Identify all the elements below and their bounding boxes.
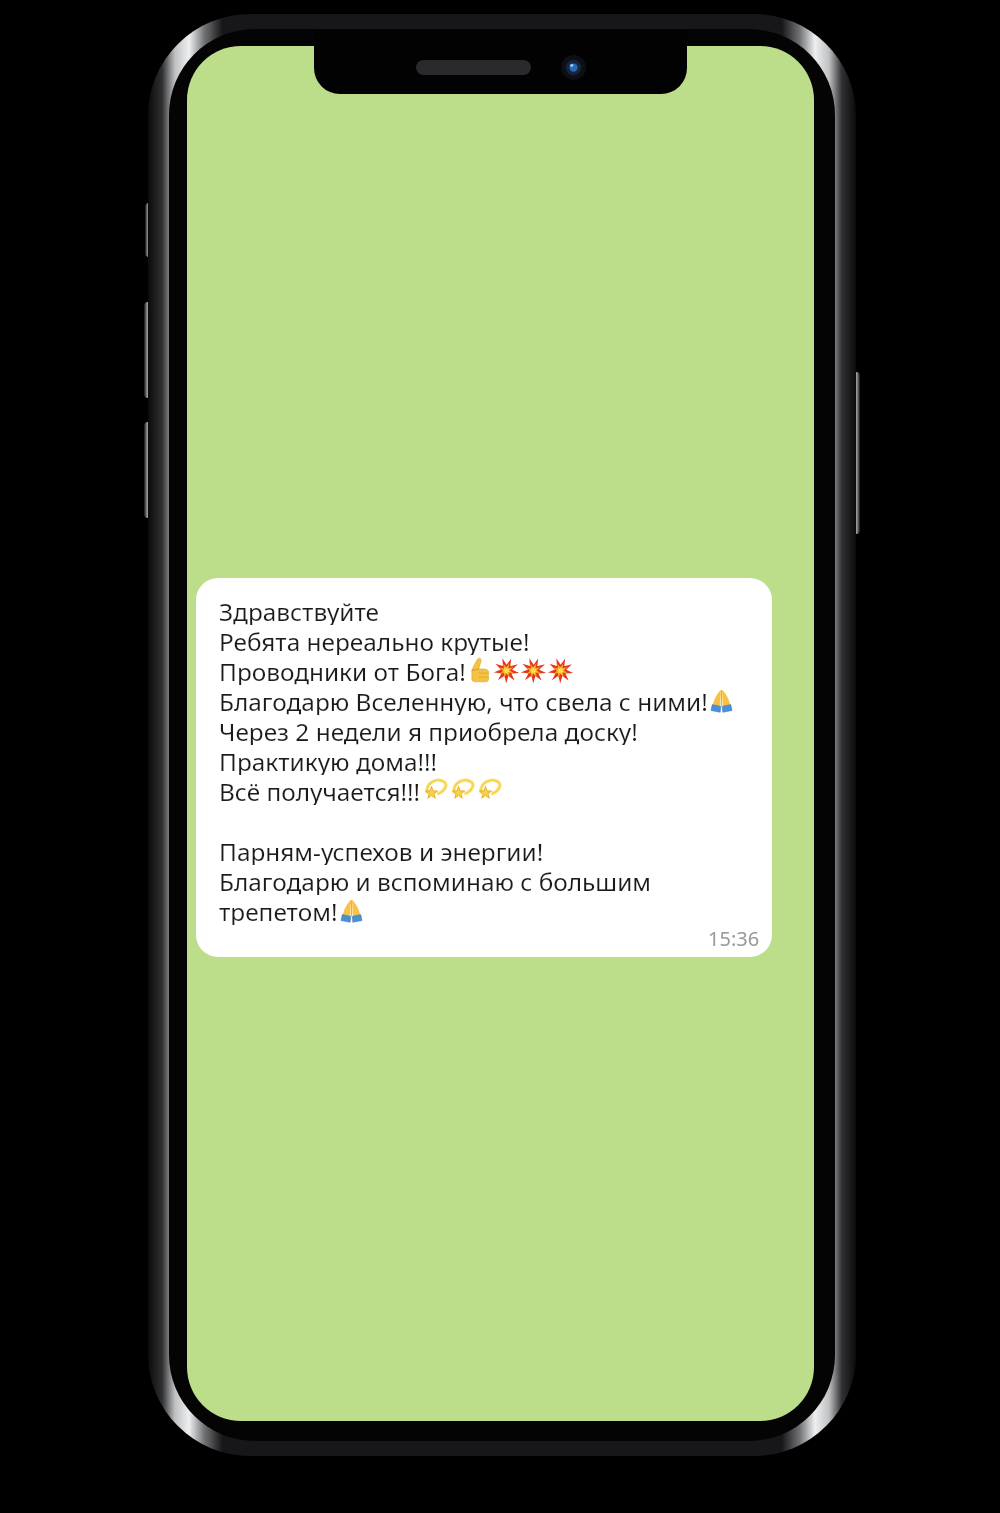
staticText: трепетом!: [219, 895, 338, 925]
button[interactable]: Volume up: [144, 302, 153, 398]
button[interactable]: Здравствуйте: [196, 578, 772, 957]
staticText: Всё получается!!!: [219, 775, 421, 805]
staticText: Проводники от Бога!: [219, 655, 466, 685]
staticText: 15:36: [708, 925, 760, 951]
other: Front camera: [561, 55, 586, 80]
staticText: Через 2 недели я приобрела доску!: [219, 715, 638, 745]
button[interactable]: Power: [851, 372, 860, 534]
staticText: Благодарю и вспоминаю с большим: [219, 865, 652, 895]
staticText: Парням-успехов и энергии!: [219, 835, 544, 865]
button[interactable]: Ringer switch: [145, 203, 153, 257]
staticText: Здравствуйте: [219, 595, 380, 625]
staticText: Благодарю Вселенную, что свела с ними!: [219, 685, 708, 715]
staticText: Ребята нереально крутые!: [219, 625, 530, 655]
button[interactable]: Volume down: [144, 422, 153, 518]
staticText: Практикую дома!!!: [219, 745, 438, 775]
